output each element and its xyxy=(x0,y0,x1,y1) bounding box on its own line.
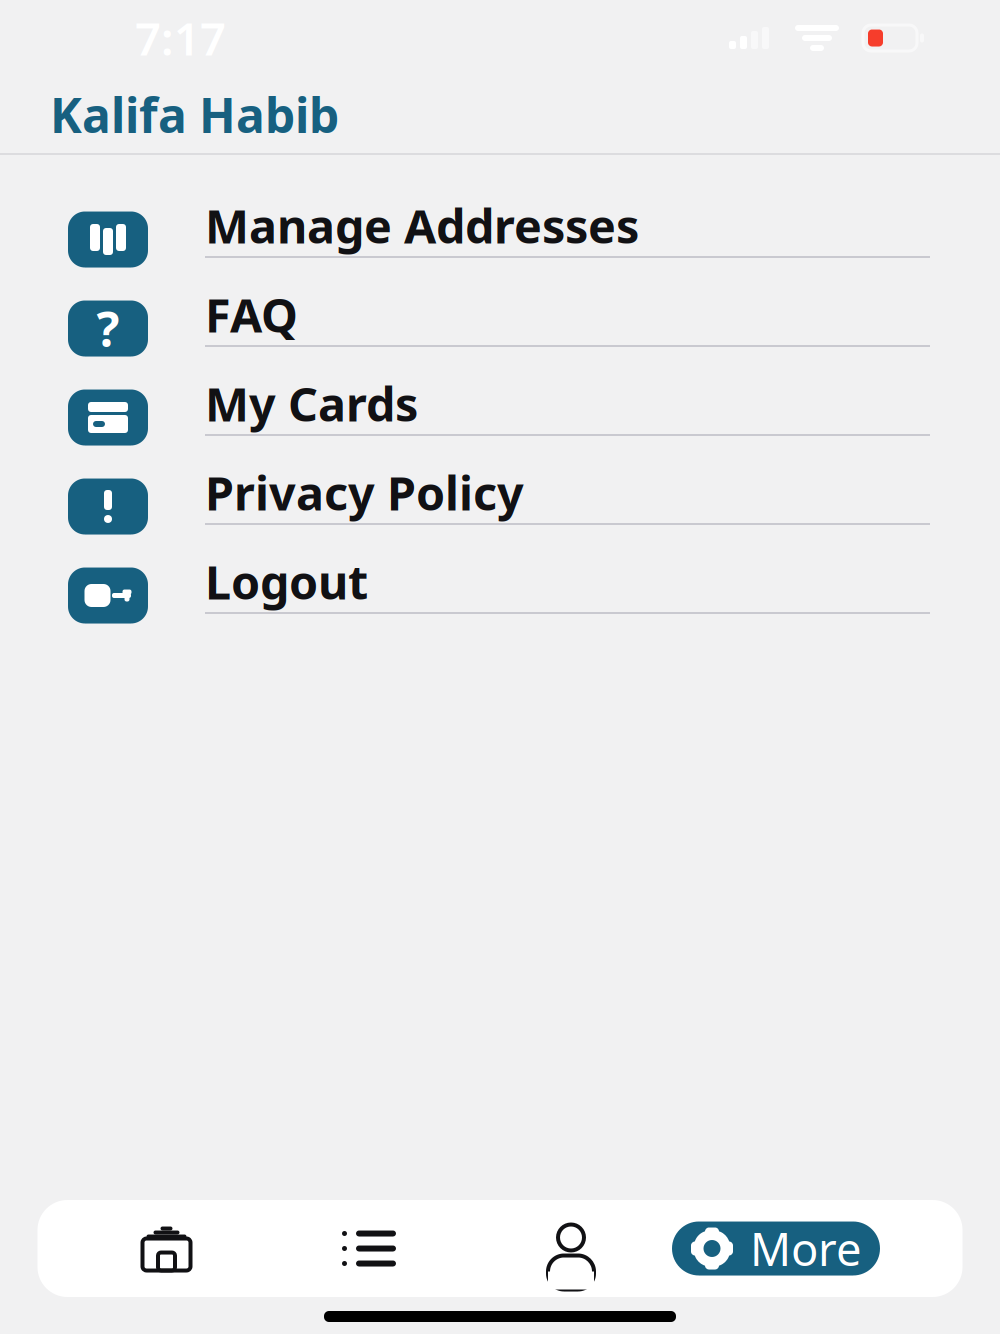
staticText: My Cards xyxy=(205,372,418,434)
button[interactable]: Home xyxy=(65,1200,268,1297)
button[interactable]: Manage Addresses xyxy=(0,195,1000,284)
button[interactable]: More xyxy=(672,1221,880,1275)
button[interactable]: Orders xyxy=(268,1200,470,1297)
button[interactable]: ? xyxy=(0,284,1000,373)
button[interactable]: Privacy Policy xyxy=(0,462,1000,551)
staticText: Manage Addresses xyxy=(205,194,639,256)
staticText: More xyxy=(750,1218,862,1279)
button[interactable]: My Cards xyxy=(0,373,1000,462)
staticText: Kalifa Habib xyxy=(50,83,339,146)
staticText: ? xyxy=(96,297,119,360)
staticText: Privacy Policy xyxy=(205,461,524,523)
button[interactable]: Logout xyxy=(0,551,1000,640)
staticText: Logout xyxy=(205,550,368,612)
staticText: FAQ xyxy=(205,283,298,345)
button[interactable]: Profile xyxy=(470,1200,672,1297)
staticText: 7:17 xyxy=(135,8,226,68)
